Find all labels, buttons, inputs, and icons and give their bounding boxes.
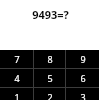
staticText: 4 [14, 72, 20, 84]
button[interactable]: 5 [34, 69, 65, 87]
button[interactable]: 7 [0, 50, 33, 68]
staticText: 9 [80, 53, 86, 65]
button[interactable]: 9 [66, 50, 99, 68]
button[interactable]: 1 [0, 88, 33, 100]
staticText: 7 [14, 53, 20, 65]
staticText: 8 [47, 53, 53, 65]
staticText: 9493=? [32, 7, 69, 22]
button[interactable]: 3 [66, 88, 99, 100]
button[interactable]: 6 [66, 69, 99, 87]
staticText: 6 [80, 72, 86, 84]
staticText: 2 [47, 91, 53, 100]
staticText: 5 [47, 72, 53, 84]
staticText: 3 [80, 91, 86, 100]
staticText: 1 [14, 91, 20, 100]
button[interactable]: 2 [34, 88, 65, 100]
button[interactable]: 4 [0, 69, 33, 87]
button[interactable]: 8 [34, 50, 65, 68]
